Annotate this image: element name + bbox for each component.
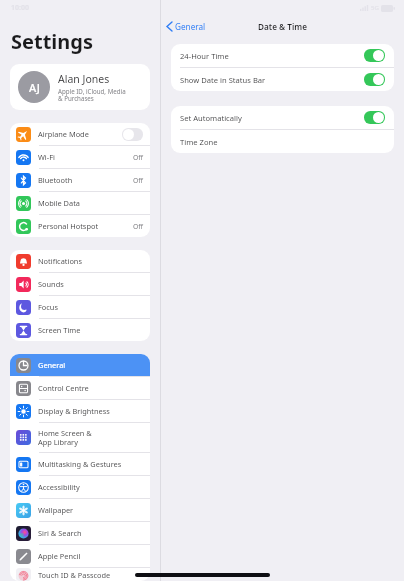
staticText: General — [175, 21, 206, 32]
staticText: Home Screen & App Library — [38, 428, 143, 448]
staticText: Set Automatically — [180, 113, 364, 123]
staticText: Mobile Data — [38, 198, 143, 208]
staticText: Airplane Mode — [38, 129, 122, 139]
button[interactable]: Control Centre — [10, 377, 150, 399]
button[interactable]: Multitasking & Gestures — [10, 453, 150, 475]
staticText: AJ — [29, 80, 40, 95]
button[interactable]: Notifications — [10, 250, 150, 272]
button[interactable]: Wallpaper — [10, 499, 150, 521]
button[interactable]: Accessibility — [10, 476, 150, 498]
button[interactable]: Toggle on — [364, 49, 385, 62]
button[interactable]: AJ — [10, 64, 150, 110]
staticText: Personal Hotspot — [38, 221, 133, 231]
staticText: Off — [133, 222, 143, 231]
button[interactable]: General — [10, 354, 150, 376]
staticText: Accessibility — [38, 482, 143, 492]
button[interactable]: Wi-Fi — [10, 146, 150, 168]
staticText: Time Zone — [180, 137, 385, 147]
button[interactable]: Time Zone — [171, 130, 394, 153]
button[interactable]: General — [161, 21, 212, 32]
button[interactable]: Siri & Search — [10, 522, 150, 544]
staticText: Off — [133, 176, 143, 185]
staticText: Show Date in Status Bar — [180, 75, 364, 85]
button[interactable]: Display & Brightness — [10, 400, 150, 422]
button[interactable]: Bluetooth — [10, 169, 150, 191]
button[interactable]: Toggle on — [364, 111, 385, 124]
staticText: Siri & Search — [38, 528, 143, 538]
button[interactable]: 24-Hour Time — [171, 44, 394, 67]
button[interactable]: Personal Hotspot — [10, 215, 150, 237]
staticText: Wallpaper — [38, 505, 143, 515]
button[interactable]: Toggle off — [122, 128, 143, 141]
staticText: Multitasking & Gestures — [38, 459, 143, 469]
staticText: 10:00 — [11, 3, 29, 13]
staticText: Apple ID, iCloud, Media & Purchases — [58, 87, 126, 103]
staticText: 5G — [371, 4, 379, 12]
button[interactable]: Sounds — [10, 273, 150, 295]
button[interactable]: Apple Pencil — [10, 545, 150, 567]
staticText: Sounds — [38, 279, 143, 289]
staticText: Focus — [38, 302, 143, 312]
staticText: Control Centre — [38, 383, 143, 393]
staticText: Notifications — [38, 256, 143, 266]
button[interactable]: Focus — [10, 296, 150, 318]
button[interactable]: Screen Time — [10, 319, 150, 341]
button[interactable]: Touch ID & Passcode — [10, 568, 150, 581]
button[interactable]: Toggle on — [364, 73, 385, 86]
staticText: Apple Pencil — [38, 551, 143, 561]
button[interactable]: Home Screen & App Library — [10, 423, 150, 452]
staticText: Date & Time — [258, 21, 307, 32]
staticText: Alan Jones — [58, 72, 110, 86]
button[interactable]: Mobile Data — [10, 192, 150, 214]
button[interactable]: Airplane Mode — [10, 123, 150, 145]
staticText: Display & Brightness — [38, 406, 143, 416]
staticText: Bluetooth — [38, 175, 133, 185]
button[interactable]: Set Automatically — [171, 106, 394, 129]
staticText: Touch ID & Passcode — [38, 570, 143, 580]
button[interactable]: Show Date in Status Bar — [171, 68, 394, 91]
staticText: Screen Time — [38, 325, 143, 335]
staticText: General — [38, 360, 143, 370]
staticText: Wi-Fi — [38, 152, 133, 162]
staticText: 24-Hour Time — [180, 51, 364, 61]
staticText: Settings — [11, 28, 93, 55]
staticText: Off — [133, 153, 143, 162]
